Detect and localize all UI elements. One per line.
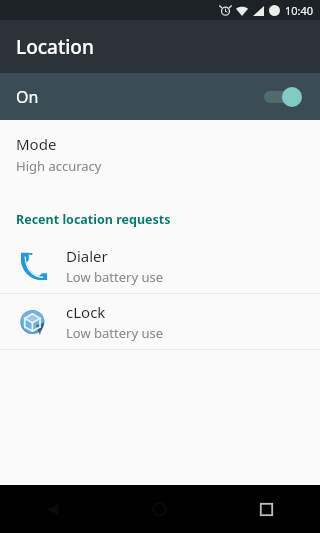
staticText: Dialer — [66, 246, 108, 266]
button[interactable]: On — [0, 73, 320, 120]
button[interactable]: Dialer — [0, 238, 320, 293]
staticText: On — [16, 86, 39, 108]
staticText: 10:40 — [285, 3, 314, 18]
staticText: Recent location requests — [16, 211, 171, 228]
staticText: High accuracy — [16, 157, 102, 175]
staticText: Low battery use — [66, 324, 163, 342]
button[interactable]: cLock — [0, 294, 320, 349]
staticText: cLock — [66, 302, 106, 322]
staticText: Low battery use — [66, 268, 163, 286]
button[interactable]: Recents — [213, 485, 320, 533]
staticText: Mode — [16, 134, 57, 154]
button[interactable]: Mode — [0, 120, 320, 189]
staticText: Location — [16, 34, 94, 60]
